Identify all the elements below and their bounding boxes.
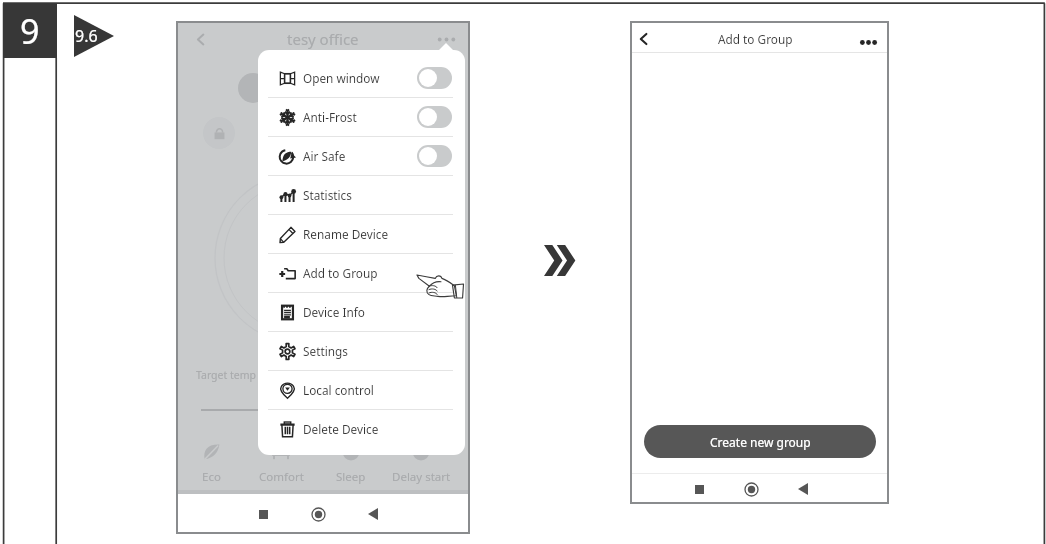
staticText: Target temp: [196, 368, 257, 382]
button[interactable]: Back: [632, 28, 654, 50]
button[interactable]: Sleep: [317, 442, 385, 485]
button[interactable]: Rename Device: [258, 215, 465, 253]
staticText: 9.6: [75, 25, 98, 47]
button[interactable]: More options: [857, 28, 879, 50]
button[interactable]: Air Safe: [258, 137, 465, 175]
button[interactable]: Back: [790, 476, 816, 502]
staticText: tesy office: [287, 29, 359, 49]
button[interactable]: Eco: [177, 442, 245, 485]
staticText: 9: [20, 8, 40, 54]
staticText: Settings: [303, 343, 348, 359]
staticText: Air Safe: [303, 148, 346, 164]
staticText: Eco: [202, 469, 221, 485]
staticText: Comfort: [259, 469, 304, 485]
button[interactable]: Home: [305, 501, 331, 527]
button[interactable]: Recents: [686, 476, 712, 502]
button[interactable]: Statistics: [258, 176, 465, 214]
staticText: Local control: [303, 382, 374, 398]
staticText: Anti-Frost: [303, 109, 357, 125]
staticText: Device Info: [303, 304, 365, 320]
staticText: Statistics: [303, 187, 352, 203]
staticText: Rename Device: [303, 226, 389, 242]
button[interactable]: Delete Device: [258, 410, 465, 448]
button[interactable]: Open window: [258, 59, 465, 97]
button[interactable]: Anti-Frost: [258, 98, 465, 136]
button[interactable]: Back: [360, 501, 386, 527]
button[interactable]: Add to Group: [258, 254, 465, 292]
staticText: Add to Group: [303, 265, 378, 281]
button[interactable]: Create new group: [644, 425, 876, 458]
button[interactable]: Settings: [258, 332, 465, 370]
button[interactable]: Local control: [258, 371, 465, 409]
button[interactable]: Back: [188, 27, 212, 51]
button[interactable]: Lock: [203, 117, 235, 149]
button[interactable]: Delay start: [387, 442, 455, 485]
button[interactable]: Recents: [250, 501, 276, 527]
staticText: Create new group: [710, 434, 811, 450]
staticText: Sleep: [336, 469, 366, 485]
button[interactable]: Comfort: [247, 442, 315, 485]
button[interactable]: Home: [738, 476, 764, 502]
staticText: Open window: [303, 70, 380, 86]
staticText: Add to Group: [718, 31, 793, 47]
staticText: Delete Device: [303, 421, 379, 437]
button[interactable]: Device Info: [258, 293, 465, 331]
button[interactable]: More options: [434, 27, 458, 51]
staticText: Delay start: [392, 469, 451, 485]
